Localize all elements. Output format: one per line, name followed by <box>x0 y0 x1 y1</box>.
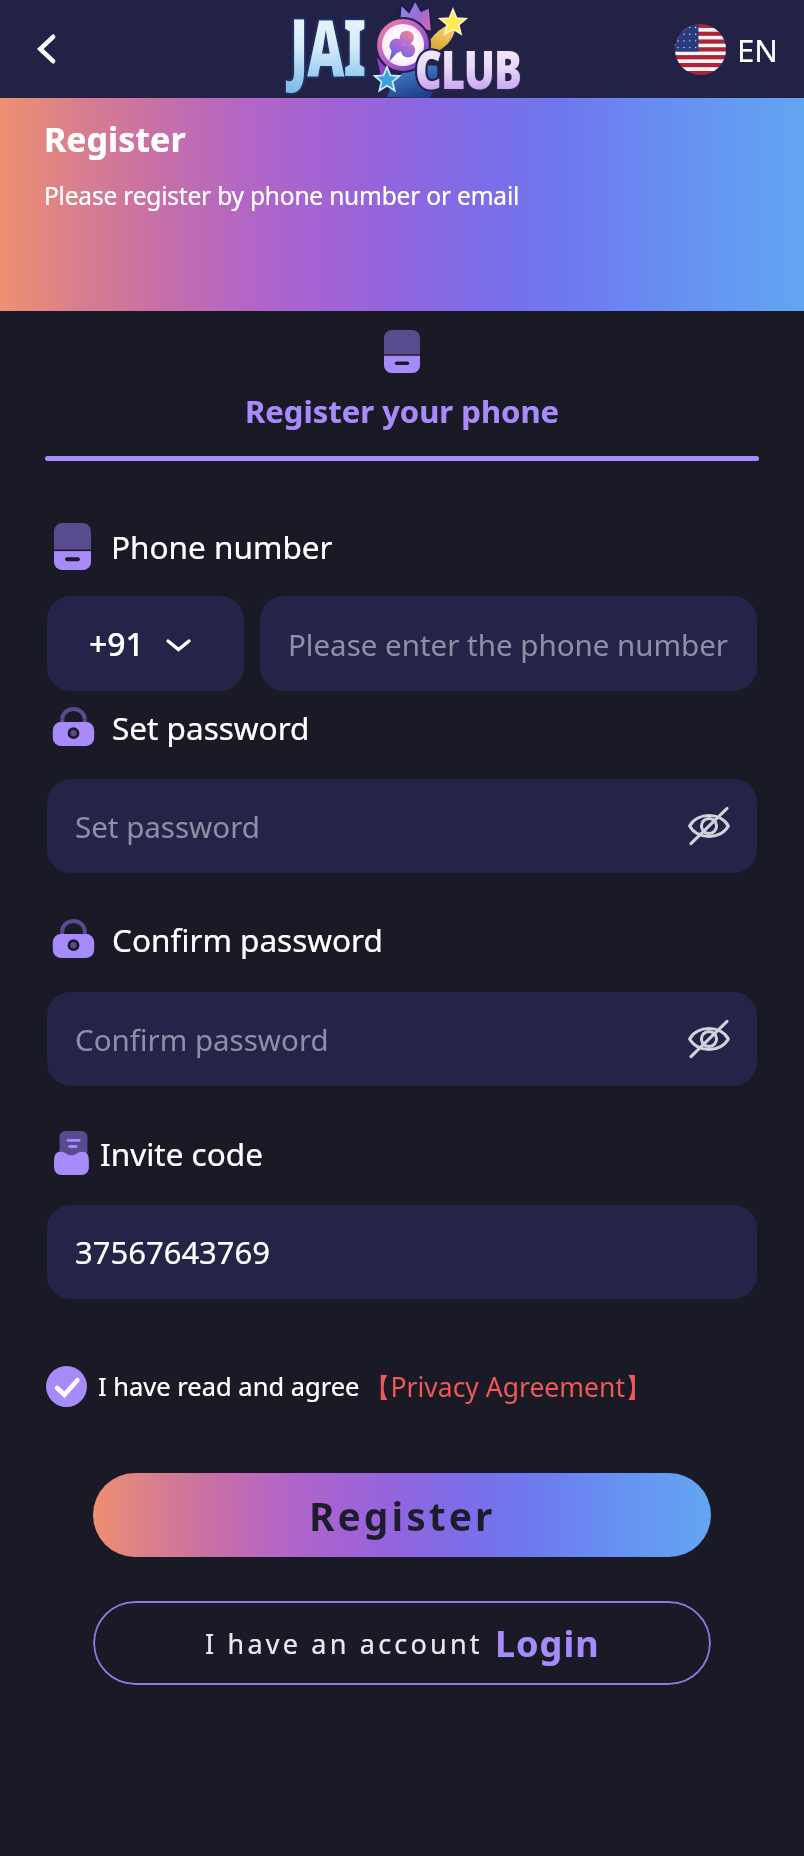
button[interactable]: Confirm password <box>47 992 757 1086</box>
staticText: CLUB <box>417 33 524 106</box>
button[interactable]: 【Privacy Agreement】 <box>364 1369 652 1405</box>
button[interactable]: Back <box>16 18 78 80</box>
staticText: JAI <box>289 0 365 100</box>
staticText: JAI <box>291 0 367 98</box>
staticText: JAI <box>292 0 368 99</box>
staticText: CLUB <box>415 30 522 103</box>
staticText: Set password <box>112 706 310 749</box>
staticText: CLUB <box>415 32 522 105</box>
staticText: JAI <box>291 0 367 100</box>
staticText: CLUB <box>414 31 521 104</box>
staticText: JAI <box>289 0 365 101</box>
button[interactable]: Register <box>93 1473 711 1557</box>
staticText: +91 <box>89 622 144 666</box>
staticText: JAI <box>288 0 364 98</box>
staticText: Register <box>309 1489 496 1542</box>
button[interactable]: Set password <box>47 779 757 873</box>
staticText: JAI <box>289 0 365 99</box>
button[interactable]: Register your phone <box>0 330 804 432</box>
staticText: CLUB <box>414 32 521 105</box>
staticText: I have an account <box>205 1625 483 1662</box>
button[interactable]: 37567643769 <box>47 1205 757 1299</box>
staticText: CLUB <box>416 32 523 105</box>
staticText: CLUB <box>415 33 522 106</box>
button[interactable]: Please enter the phone number <box>260 596 757 691</box>
staticText: CLUB <box>413 33 520 106</box>
staticText: JAI <box>290 0 366 97</box>
staticText: Confirm password <box>112 918 383 961</box>
staticText: I have read and agree <box>98 1369 360 1404</box>
staticText: CLUB <box>413 32 520 105</box>
staticText: Confirm password <box>75 1019 329 1059</box>
staticText: CLUB <box>414 34 521 107</box>
staticText: Register <box>44 116 186 162</box>
staticText: CLUB <box>415 34 522 107</box>
staticText: JAI <box>289 0 365 97</box>
button[interactable]: Show password <box>683 1013 735 1065</box>
staticText: JAI <box>290 0 366 98</box>
staticText: Set password <box>75 806 260 846</box>
staticText: 37567643769 <box>75 1231 271 1273</box>
staticText: CLUB <box>416 34 523 107</box>
button[interactable]: EN <box>675 24 778 75</box>
staticText: CLUB <box>416 30 523 103</box>
button[interactable]: Show password <box>683 800 735 852</box>
staticText: CLUB <box>415 31 522 104</box>
staticText: CLUB <box>416 33 523 106</box>
staticText: Please enter the phone number <box>288 624 729 664</box>
staticText: CLUB <box>416 31 523 104</box>
staticText: CLUB <box>414 30 521 103</box>
staticText: Phone number <box>111 525 333 568</box>
staticText: JAI <box>291 0 367 97</box>
button[interactable]: +91 <box>47 596 244 691</box>
staticText: CLUB <box>413 31 520 104</box>
staticText: Register your phone <box>245 390 560 432</box>
staticText: JAI <box>292 0 368 100</box>
staticText: JAI <box>291 0 367 99</box>
staticText: JAI <box>288 0 364 99</box>
staticText: JAI <box>290 0 366 100</box>
staticText: CLUB <box>414 33 521 106</box>
staticText: JAI <box>291 0 367 101</box>
staticText: CLUB <box>417 32 524 105</box>
staticText: JAI <box>292 0 368 98</box>
button[interactable]: I have an account <box>93 1601 711 1685</box>
staticText: CLUB <box>417 31 524 104</box>
staticText: JAI <box>288 0 364 100</box>
staticText: JAI <box>290 0 366 101</box>
staticText: JAI <box>290 0 366 99</box>
staticText: Login <box>495 1619 600 1668</box>
button[interactable]: I have read and agree <box>46 1366 652 1407</box>
staticText: Invite code <box>100 1132 263 1175</box>
staticText: JAI <box>289 0 365 98</box>
staticText: Please register by phone number or email <box>44 179 520 212</box>
staticText: EN <box>737 29 778 71</box>
